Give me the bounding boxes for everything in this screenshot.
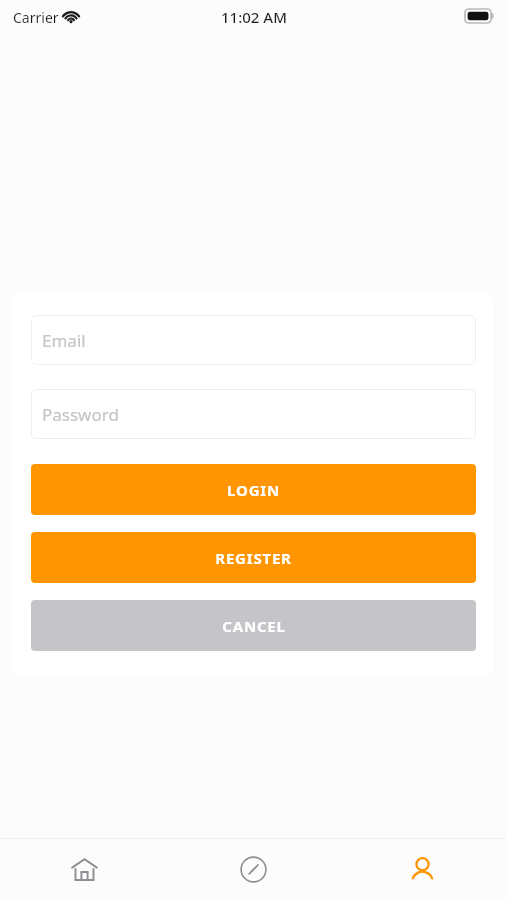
staticText: LOGIN xyxy=(227,480,280,500)
button[interactable]: Profile xyxy=(338,839,507,900)
button[interactable]: Password xyxy=(31,389,476,439)
button[interactable]: CANCEL xyxy=(31,600,476,651)
button[interactable]: Explore xyxy=(169,839,338,900)
staticText: Email xyxy=(42,329,86,352)
staticText: Carrier xyxy=(13,8,59,27)
button[interactable]: LOGIN xyxy=(31,464,476,515)
staticText: 11:02 AM xyxy=(221,7,287,27)
staticText: CANCEL xyxy=(222,616,286,636)
staticText: Password xyxy=(42,403,119,426)
button[interactable]: REGISTER xyxy=(31,532,476,583)
staticText: REGISTER xyxy=(215,548,292,568)
button[interactable]: Home xyxy=(0,839,169,900)
button[interactable]: Email xyxy=(31,315,476,365)
